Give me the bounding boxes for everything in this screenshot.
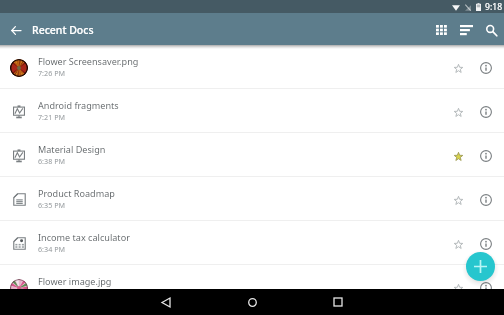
button[interactable]: Flower image.jpg	[0, 265, 504, 308]
staticText: 6:35 PM	[38, 200, 65, 210]
button[interactable]: Recents	[318, 289, 358, 315]
staticText: Recent Docs	[32, 23, 94, 37]
button[interactable]: Info	[474, 222, 498, 265]
button[interactable]: Star	[446, 223, 470, 266]
staticText: Material Design	[38, 143, 106, 155]
staticText: Income tax calculator	[38, 231, 130, 243]
button[interactable]: Star	[446, 135, 470, 178]
button[interactable]: Info	[474, 90, 498, 133]
button[interactable]: Info	[474, 134, 498, 177]
staticText: Flower Screensaver.png	[38, 55, 139, 67]
button[interactable]: Star	[446, 91, 470, 134]
button[interactable]: Android fragments	[0, 89, 504, 132]
button[interactable]: Star	[446, 47, 470, 90]
staticText: Flower image.jpg	[38, 275, 112, 287]
button[interactable]: Info	[474, 46, 498, 89]
button[interactable]: Home	[232, 289, 272, 315]
button[interactable]: Income tax calculator	[0, 221, 504, 264]
button[interactable]: Info	[474, 178, 498, 221]
staticText: 7:21 PM	[38, 112, 65, 122]
button[interactable]: Add	[466, 252, 495, 281]
button[interactable]: Info	[474, 266, 498, 309]
button[interactable]: Search	[479, 14, 504, 46]
staticText: 6:38 PM	[38, 156, 65, 166]
button[interactable]: Star	[446, 267, 470, 310]
button[interactable]: Product Roadmap	[0, 177, 504, 220]
button[interactable]: Star	[446, 179, 470, 222]
staticText: 7:20 PM	[38, 288, 65, 298]
button[interactable]: Back	[0, 14, 32, 46]
staticText: Product Roadmap	[38, 187, 115, 199]
button[interactable]: Back	[146, 289, 186, 315]
button[interactable]: Flower Screensaver.png	[0, 45, 504, 88]
button[interactable]: Sort	[454, 14, 479, 46]
staticText: 7:26 PM	[38, 68, 65, 78]
button[interactable]: Material Design	[0, 133, 504, 176]
staticText: 9:18	[485, 1, 503, 13]
staticText: Android fragments	[38, 99, 119, 111]
staticText: 6:34 PM	[38, 244, 65, 254]
button[interactable]: Grid view	[429, 14, 454, 46]
